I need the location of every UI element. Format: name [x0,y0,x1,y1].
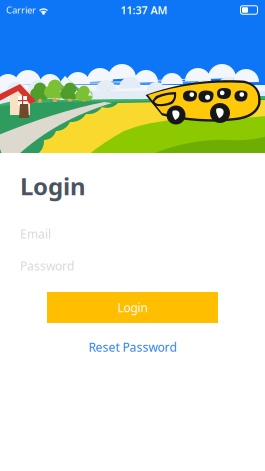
staticText: Password [20,258,74,274]
button[interactable]: Login [47,292,218,323]
button[interactable]: Reset Password [47,339,218,355]
staticText: Login [117,299,147,315]
staticText: Login [20,170,86,202]
staticText: Carrier [6,4,36,16]
staticText: Email [20,226,51,242]
staticText: Reset Password [88,339,176,355]
staticText: 11:37 AM [120,3,167,17]
